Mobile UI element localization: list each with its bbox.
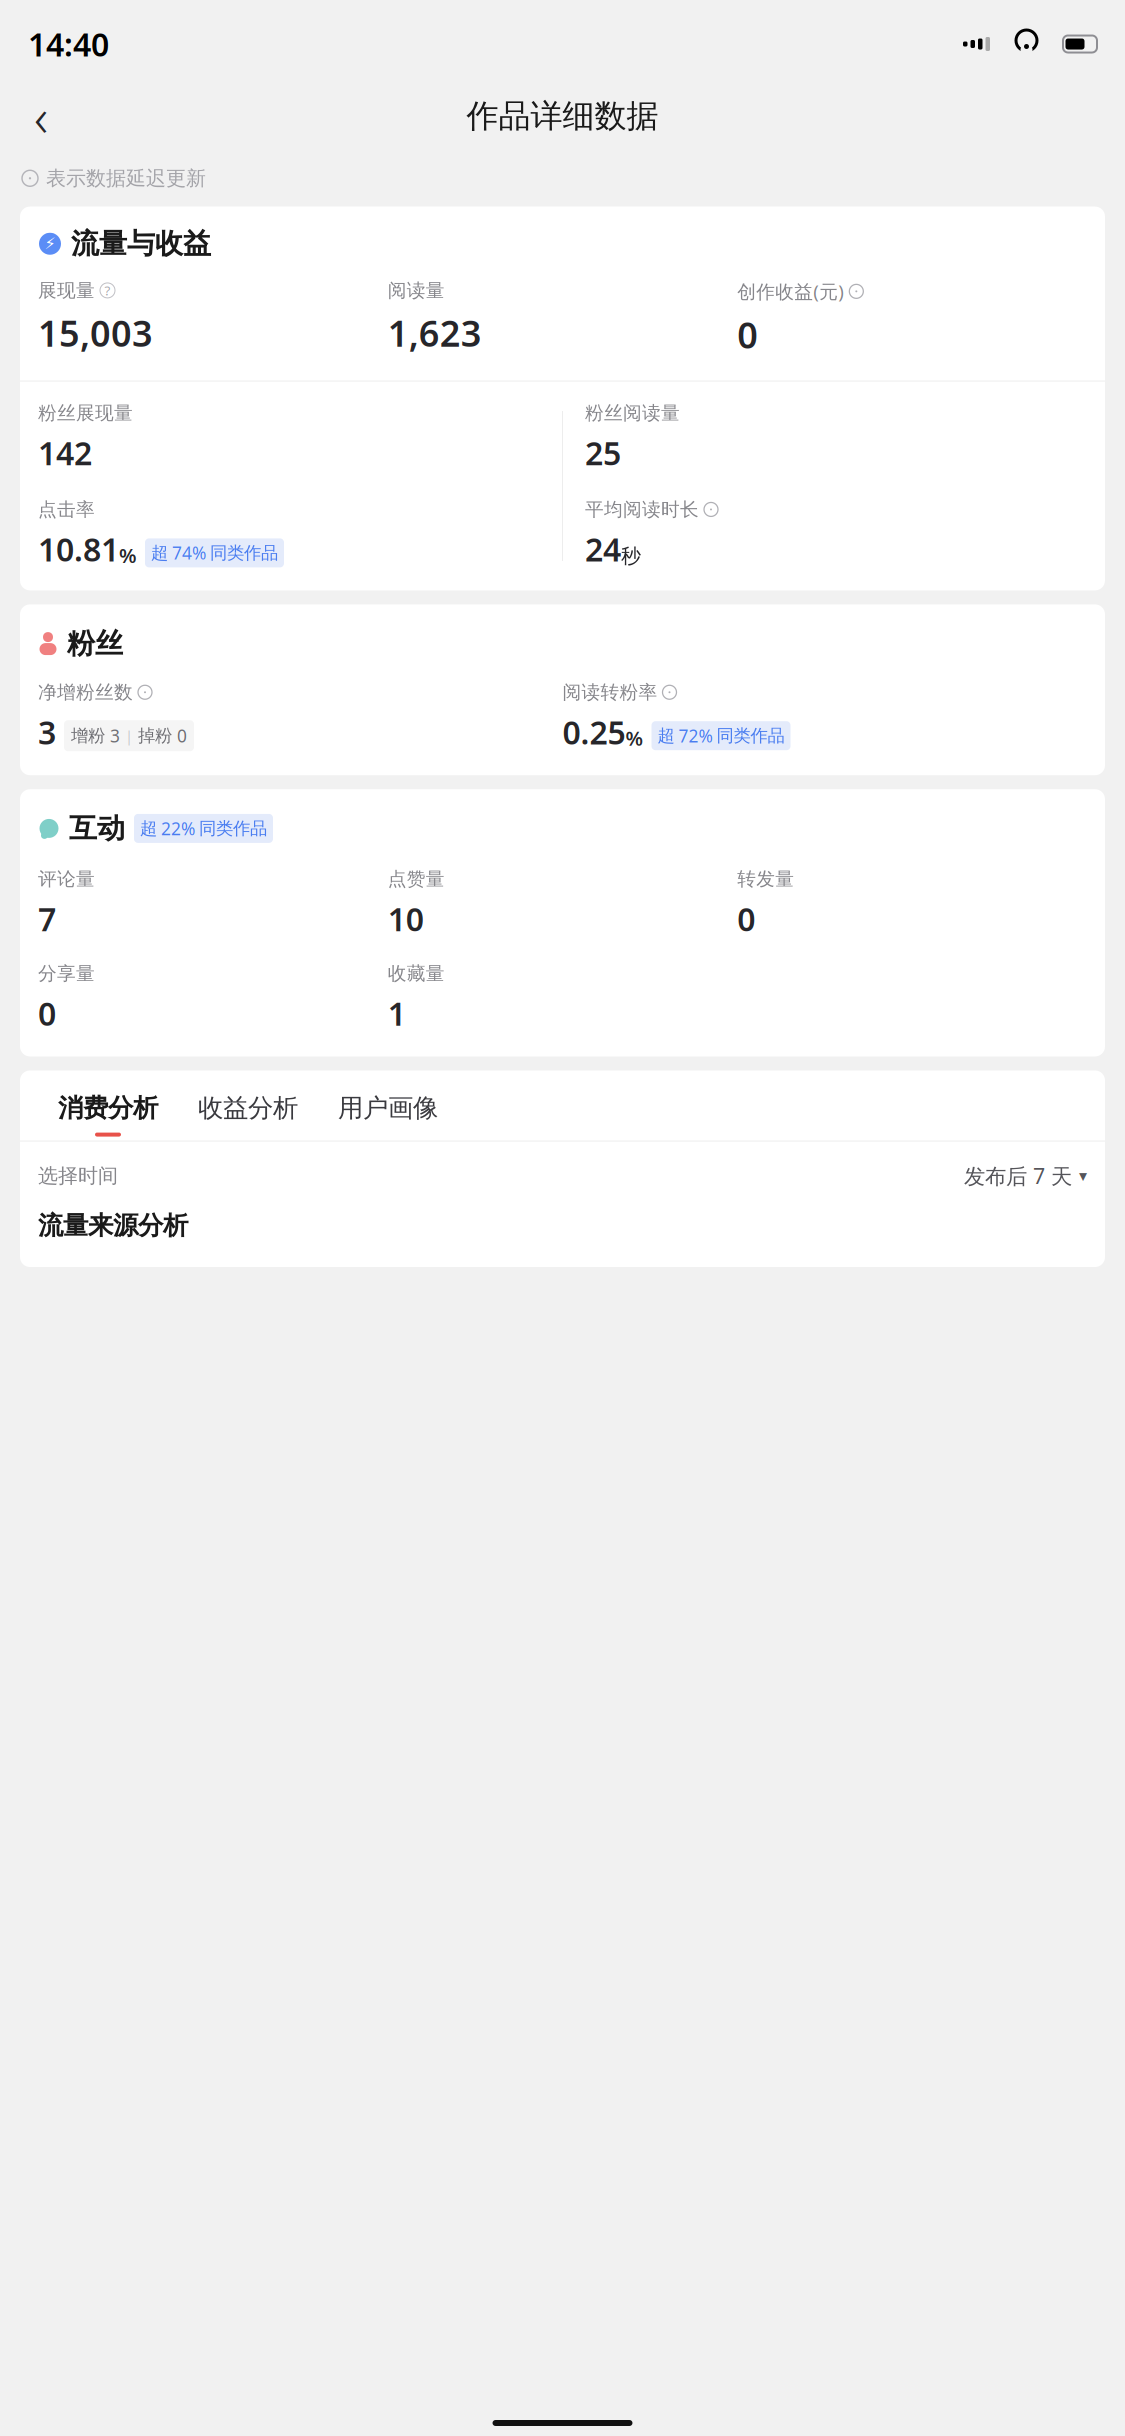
staticText: 秒 (621, 544, 641, 568)
staticText: % (119, 542, 137, 568)
staticText: 10.81 (38, 528, 119, 570)
staticText: 3 (110, 724, 120, 747)
staticText: 收益分析 (198, 1092, 298, 1124)
staticText: 粉丝阅读量 (585, 402, 680, 424)
staticText: 点击率 (38, 498, 95, 521)
staticText: ? (104, 282, 110, 299)
staticText: 阅读量 (388, 279, 445, 302)
button[interactable]: 返回 (18, 93, 64, 139)
staticText: 消费分析 (58, 1092, 158, 1124)
staticText: 74% (172, 541, 206, 564)
staticText: 用户画像 (338, 1092, 438, 1124)
staticText: 分享量 (38, 962, 95, 985)
staticText: 选择时间 (38, 1163, 118, 1188)
staticText: 72% (678, 724, 712, 747)
staticText: 0.25 (562, 711, 625, 753)
staticText: ▾ (1079, 1167, 1087, 1185)
staticText: 展现量 (38, 279, 95, 302)
staticText: 增粉 (71, 725, 105, 746)
staticText: 25 (585, 431, 621, 474)
staticText: 发布后 7 天 (964, 1162, 1072, 1190)
staticText: 创作收益(元) (737, 279, 844, 304)
staticText: 14:40 (28, 23, 109, 65)
staticText: 超 (657, 725, 674, 746)
staticText: 流量与收益 (71, 227, 211, 261)
staticText: 点赞量 (388, 868, 445, 890)
staticText: 同类作品 (199, 818, 267, 839)
staticText: 互动 (69, 811, 125, 846)
staticText: 10 (388, 897, 424, 940)
staticText: 收藏量 (388, 962, 445, 985)
staticText: 0 (737, 897, 755, 940)
staticText: 0 (737, 311, 758, 358)
staticText: 3 (38, 711, 56, 753)
staticText: 流量来源分析 (38, 1210, 188, 1241)
staticText: 同类作品 (716, 725, 784, 746)
staticText: 同类作品 (210, 542, 278, 563)
staticText: % (625, 725, 643, 751)
staticText: 0 (177, 724, 187, 747)
staticText: 阅读转粉率 (562, 681, 657, 704)
staticText: 142 (38, 431, 92, 474)
staticText: ‹ (34, 81, 48, 151)
button[interactable]: 收益分析 (178, 1092, 318, 1141)
button[interactable]: 选择时间 (20, 1142, 1105, 1210)
staticText: 超 (151, 542, 168, 563)
staticText: | (125, 726, 133, 745)
staticText: 1,623 (388, 309, 482, 357)
staticText: 表示数据延迟更新 (46, 166, 206, 191)
staticText: 0 (38, 992, 56, 1034)
staticText: 转发量 (737, 868, 794, 890)
button[interactable]: 用户画像 (318, 1092, 458, 1141)
staticText: 超 (140, 818, 157, 839)
staticText: 作品详细数据 (466, 96, 658, 136)
staticText: 15,003 (38, 309, 153, 357)
staticText: 评论量 (38, 868, 95, 890)
staticText: 粉丝展现量 (38, 402, 133, 424)
staticText: 24 (585, 528, 621, 570)
staticText: 7 (38, 897, 56, 940)
staticText: 掉粉 (138, 725, 172, 746)
staticText: 1 (388, 992, 406, 1034)
staticText: 平均阅读时长 (585, 498, 699, 521)
staticText: 净增粉丝数 (38, 681, 133, 704)
staticText: ⚡︎ (44, 235, 55, 253)
staticText: 22% (161, 817, 195, 840)
button[interactable]: 消费分析 (38, 1092, 178, 1141)
staticText: 粉丝 (67, 626, 123, 661)
